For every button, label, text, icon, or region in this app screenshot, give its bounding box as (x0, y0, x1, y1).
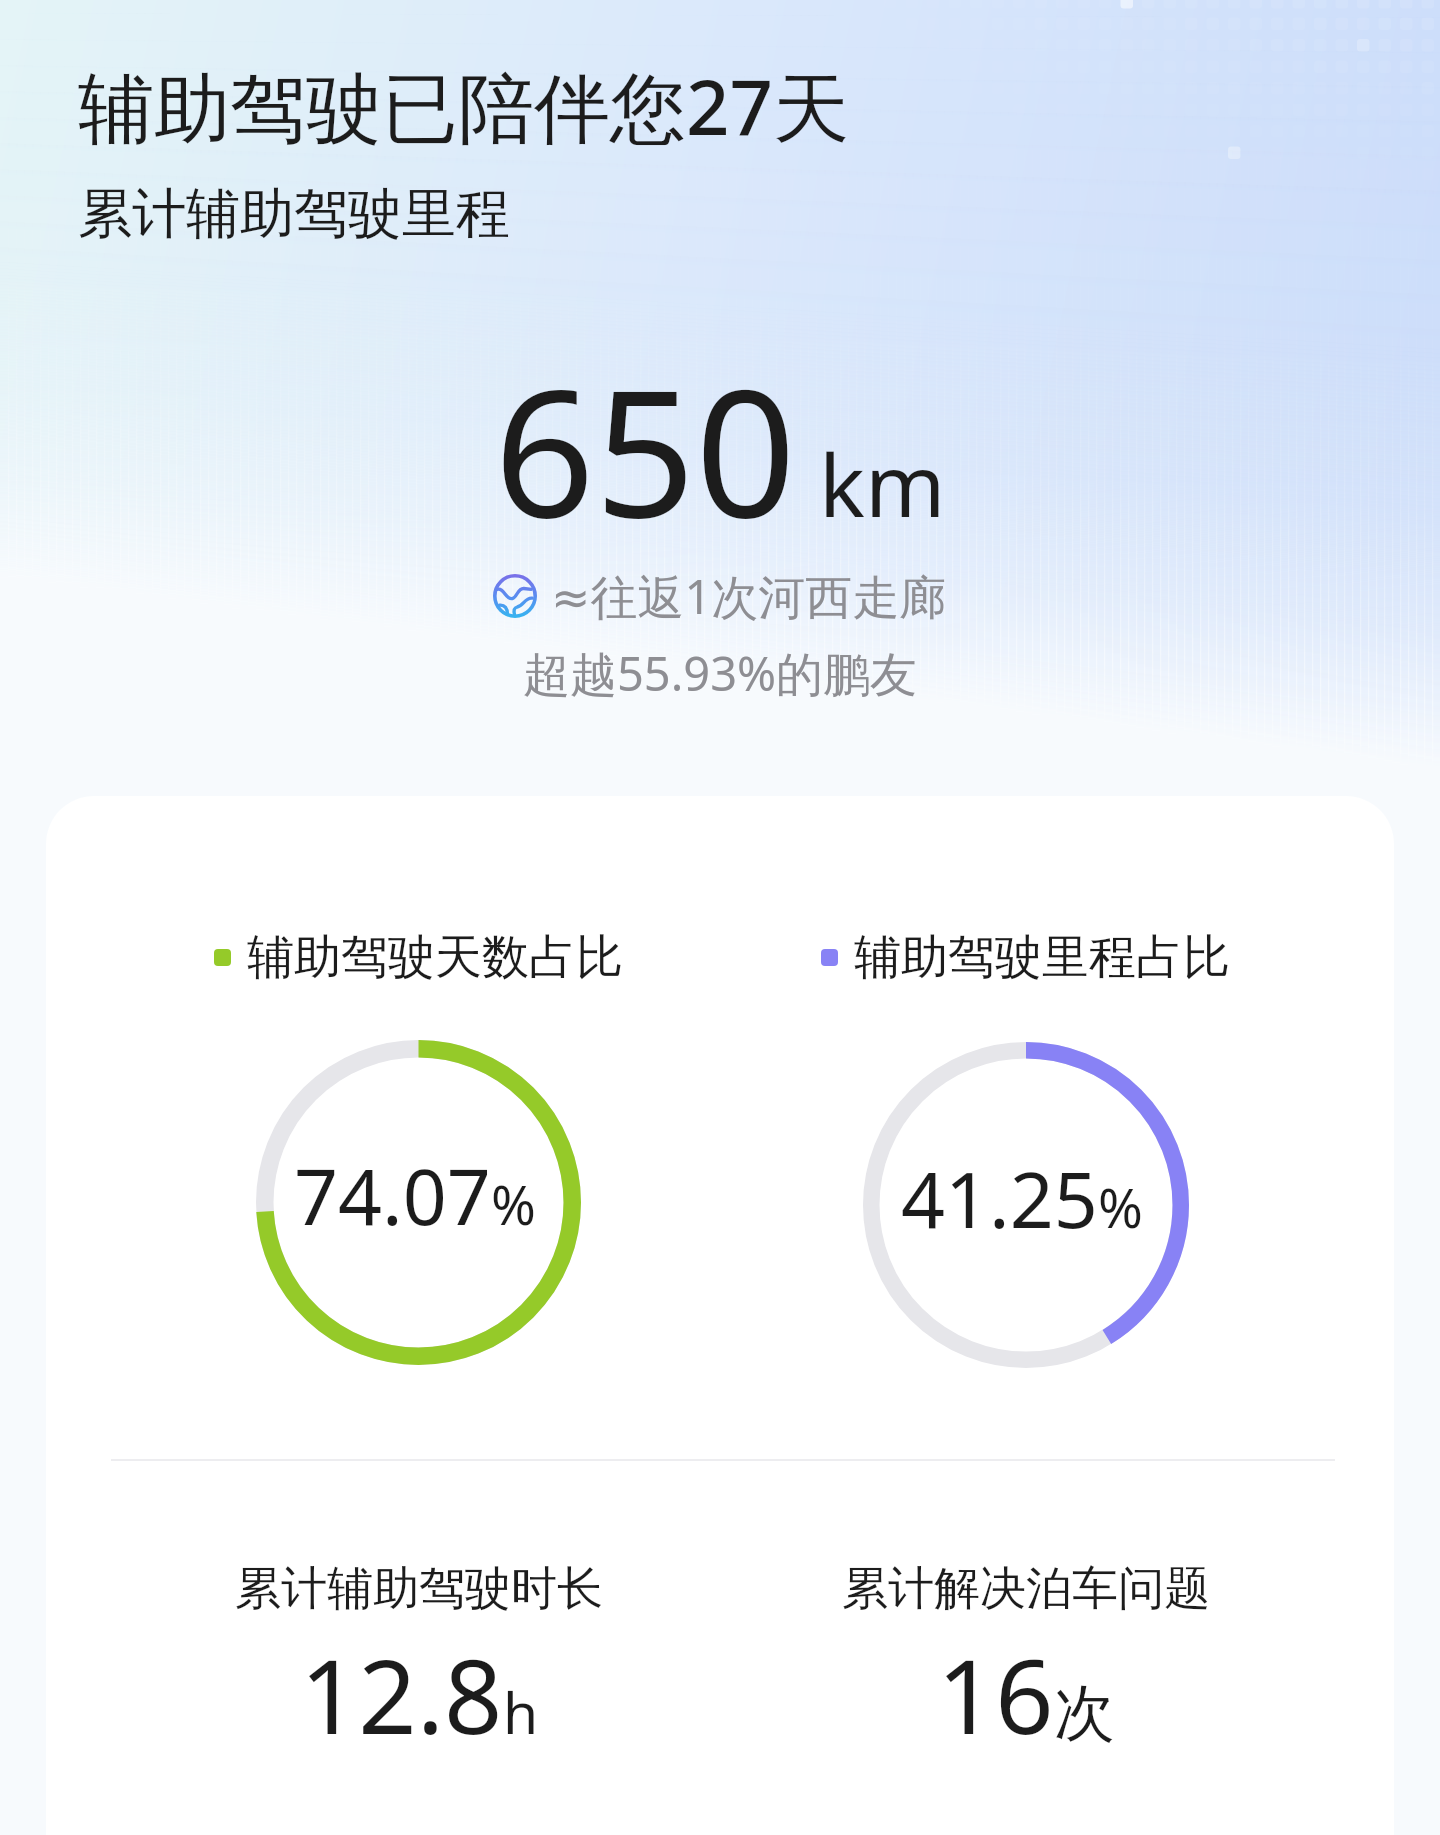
staticText: 累计解决泊车问题 (842, 1560, 1210, 1618)
staticText: 累计辅助驾驶里程 (78, 180, 510, 248)
staticText: 辅助驾驶已陪伴您27天 (78, 54, 849, 158)
staticText: 辅助驾驶里程占比 (854, 928, 1230, 987)
staticText: ≈往返1次河西走廊 (551, 564, 947, 628)
staticText: h (503, 1673, 539, 1751)
staticText: 12.8 (300, 1625, 503, 1764)
staticText: 辅助驾驶天数占比 (247, 928, 623, 987)
staticText: 次 (1054, 1675, 1115, 1752)
staticText: % (491, 1167, 536, 1241)
staticText: km (819, 425, 946, 542)
button[interactable]: 辅助驾驶里程占比 (722, 880, 1329, 1440)
staticText: 74.07 (294, 1143, 491, 1248)
staticText: 累计辅助驾驶时长 (235, 1560, 603, 1618)
staticText: 16 (937, 1625, 1054, 1764)
staticText: 650 (494, 329, 797, 569)
button[interactable]: 累计辅助驾驶时长 (115, 1500, 722, 1800)
staticText: % (1098, 1170, 1143, 1244)
button[interactable]: 辅助驾驶天数占比 (115, 880, 722, 1440)
button[interactable]: 累计解决泊车问题 (722, 1500, 1329, 1800)
staticText: 41.25 (901, 1146, 1098, 1251)
staticText: 超越55.93%的鹏友 (0, 641, 1440, 705)
